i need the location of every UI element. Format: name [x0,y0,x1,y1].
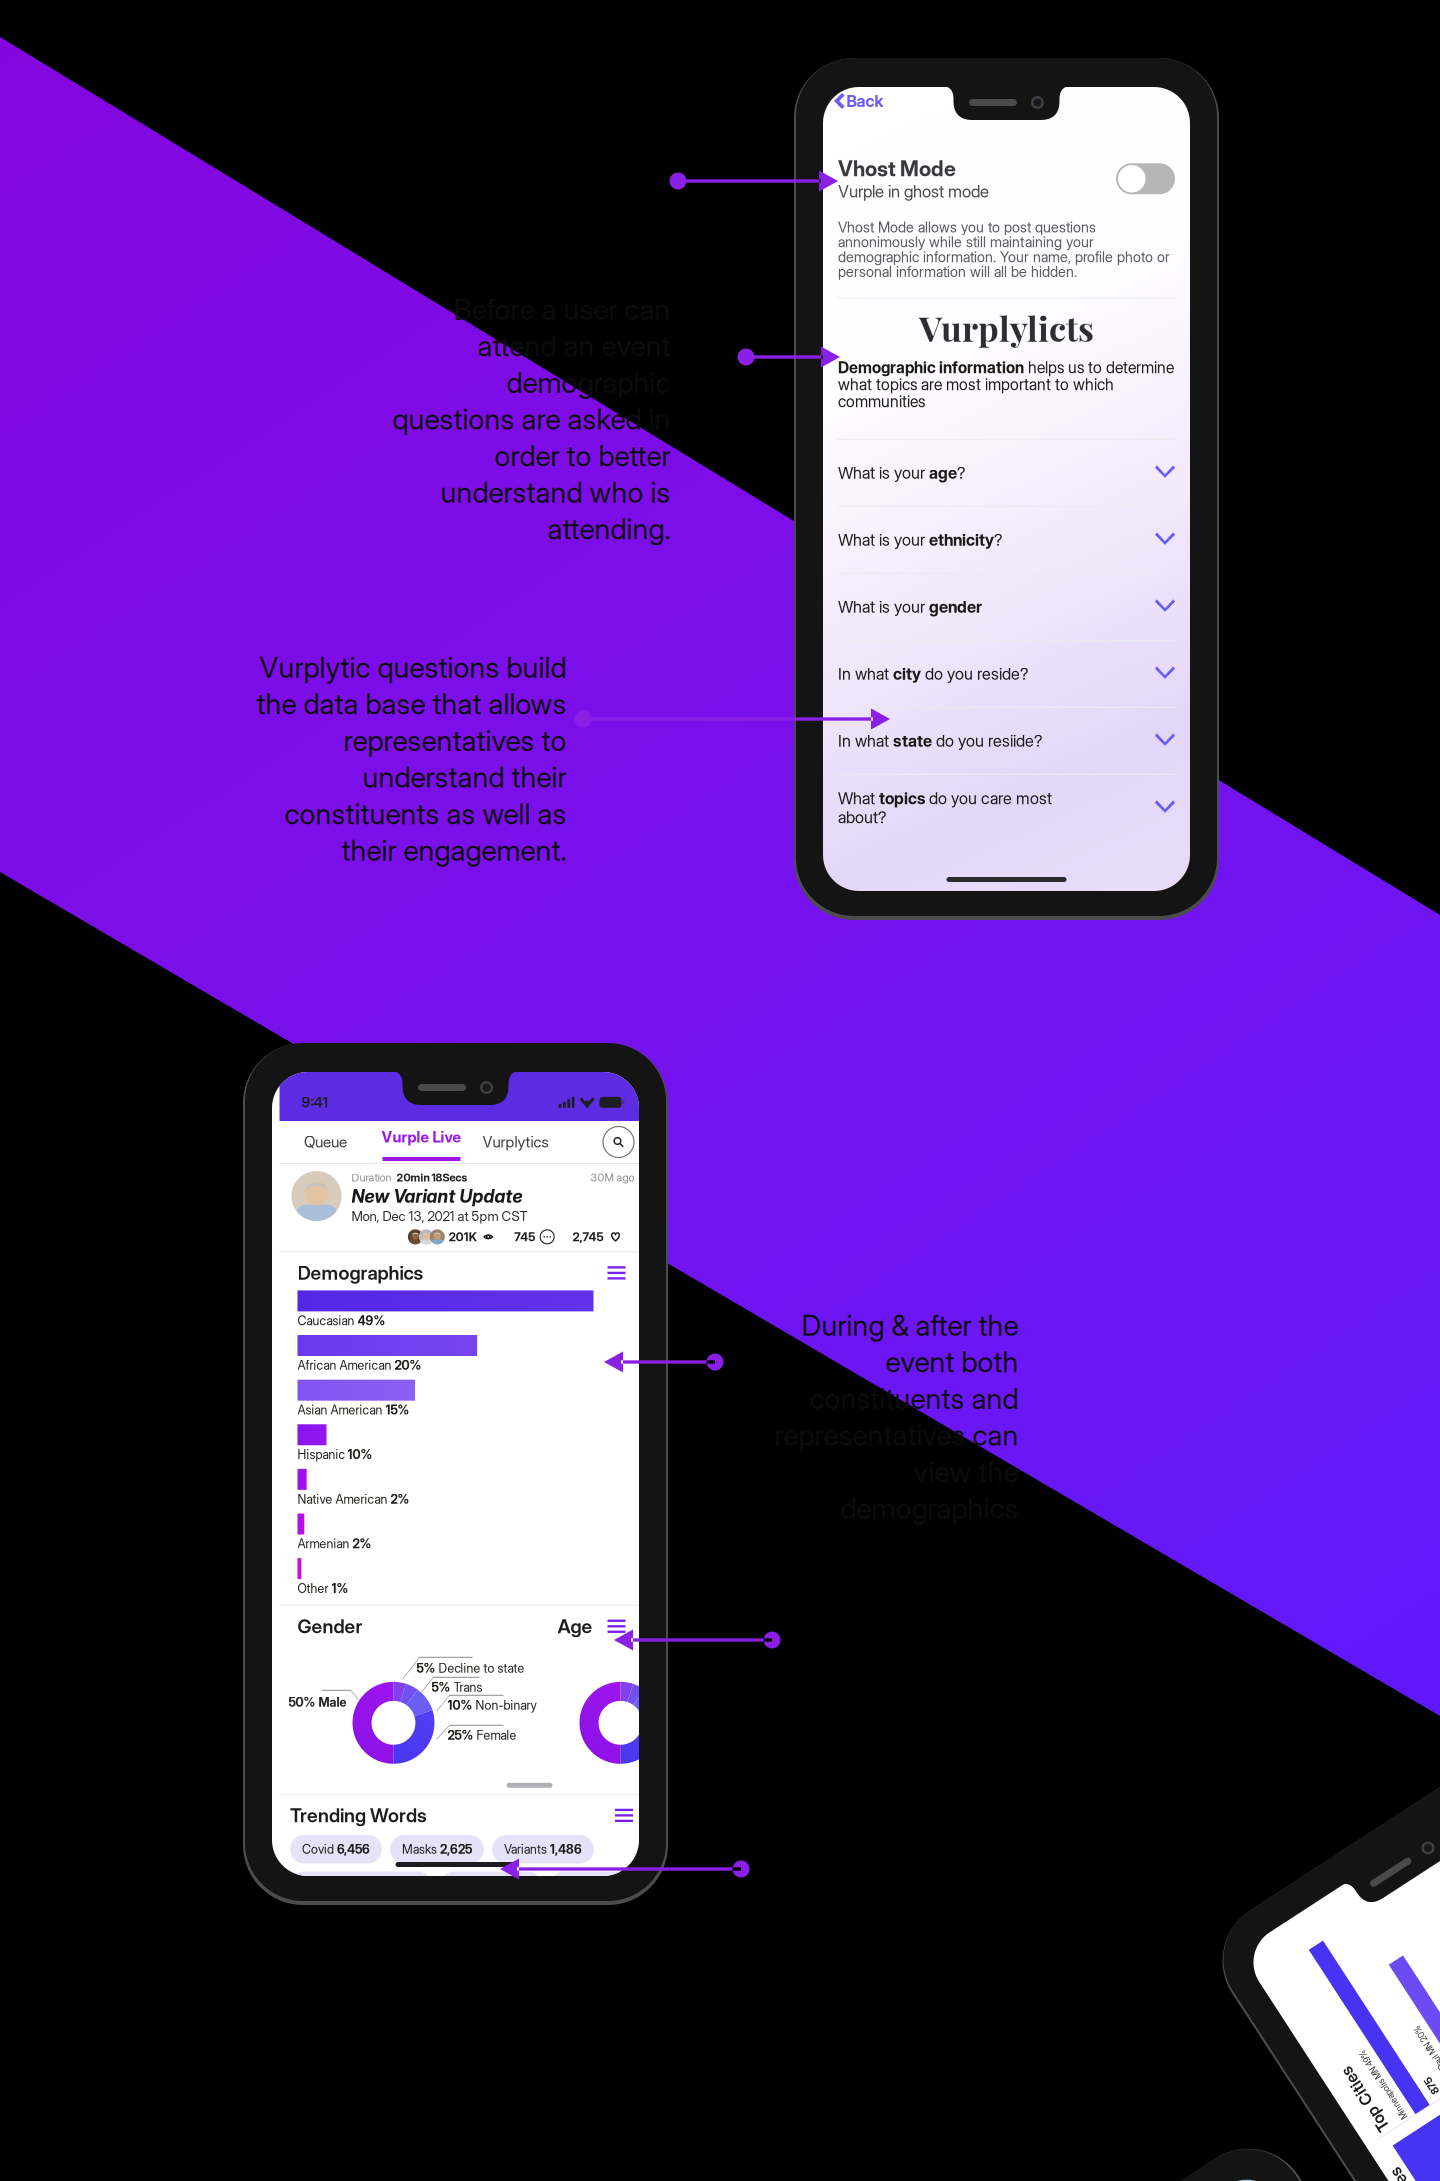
staticText: Top Cities [1403,2080,1440,2100]
staticText: Trending Words [290,1804,427,1827]
staticText: Back [847,91,884,111]
staticText: Vhost Mode allows you to post questions … [838,219,1170,281]
button[interactable]: Back [823,85,884,115]
button[interactable]: What is your gender [823,574,1190,640]
button[interactable]: In what state do you resiide? [823,708,1190,774]
button[interactable]: Vurplytics [471,1121,559,1163]
staticText: Masks 2,625 [402,1842,472,1856]
button[interactable]: Masks 2,625 [390,1835,484,1863]
button[interactable]: Vurple Live [371,1121,471,1163]
button[interactable]: What topics do you care most about? [823,775,1190,841]
button[interactable]: Vhost Mode toggle [1116,163,1175,194]
button[interactable]: What is your ethnicity? [823,507,1190,573]
button[interactable]: Unemployment 1,356 [290,1871,432,1900]
staticText: 745 [514,1230,535,1244]
staticText: Variants 1,486 [504,1842,582,1856]
button[interactable]: What is your age? [823,440,1190,506]
staticText: During & after the event both constituen… [774,1308,1018,1526]
staticText: New Variant Update [351,1185,522,1207]
staticText: Before a user can attend an event demogr… [392,292,670,546]
staticText: Top Cities [1417,1969,1440,1989]
staticText: 201K [449,1230,477,1244]
staticText: In what city do you reside? [838,664,1028,683]
staticText: Veterans 1,271 [452,1878,530,1893]
staticText: Vurple in ghost mode [838,181,989,202]
staticText: What is your age? [838,463,965,482]
button[interactable]: Queue [279,1120,371,1163]
staticText: Mon, Dec 13, 2021 at 5pm CST [351,1208,527,1224]
staticText: Vhost Mode [838,156,956,181]
staticText: 5% Trans [431,1680,482,1694]
button[interactable]: Search [600,1124,636,1160]
staticText: Vurplytics [482,1133,548,1151]
button[interactable]: Demographics options [604,1263,628,1283]
staticText: 10% Non-binary [447,1698,536,1712]
button[interactable]: Age options [604,1616,628,1636]
staticText: Hispanic 10% [297,1447,372,1462]
staticText: What is your gender [838,597,982,616]
staticText: Vurplylicts [919,305,1094,350]
button[interactable]: Veterans 1,271 [440,1871,542,1900]
staticText: Queue [304,1133,347,1151]
staticText: In what state do you resiide? [838,731,1042,750]
staticText: 2,745 [572,1230,603,1244]
staticText: 9:41 [301,1094,327,1111]
staticText: Vurple Live [381,1128,461,1146]
staticText: What topics do you care most about? [838,789,1052,827]
staticText: Vurplytic questions build the data base … [256,650,566,868]
staticText: 20min 18Secs [396,1171,467,1184]
staticText: 30M ago [590,1171,634,1184]
staticText: Asian American 15% [297,1403,409,1417]
staticText: What is your ethnicity? [838,530,1002,549]
staticText: Age [557,1615,592,1638]
staticText: Caucasian 49% [297,1313,385,1328]
button[interactable]: Variants 1,486 [492,1835,594,1863]
staticText: Native American 2% [297,1492,409,1506]
staticText: 50% Male [288,1695,346,1710]
button[interactable]: Trending options [612,1805,636,1825]
staticText: Other 1% [297,1581,348,1596]
staticText: Demographics [297,1261,423,1284]
button[interactable]: In what city do you reside? [823,641,1190,707]
staticText: 25% Female [447,1728,516,1742]
button[interactable]: Covid 6,456 [290,1835,382,1863]
staticText: African American 20% [297,1358,421,1373]
staticText: Covid 6,456 [302,1842,370,1856]
button[interactable]: Voting 949 [550,1871,636,1900]
staticText: Demographic information helps us to dete… [838,358,1174,411]
staticText: Gender [297,1615,362,1638]
staticText: Duration [351,1171,391,1184]
staticText: Armenian 2% [297,1536,371,1551]
staticText: 5% Decline to state [416,1661,524,1675]
